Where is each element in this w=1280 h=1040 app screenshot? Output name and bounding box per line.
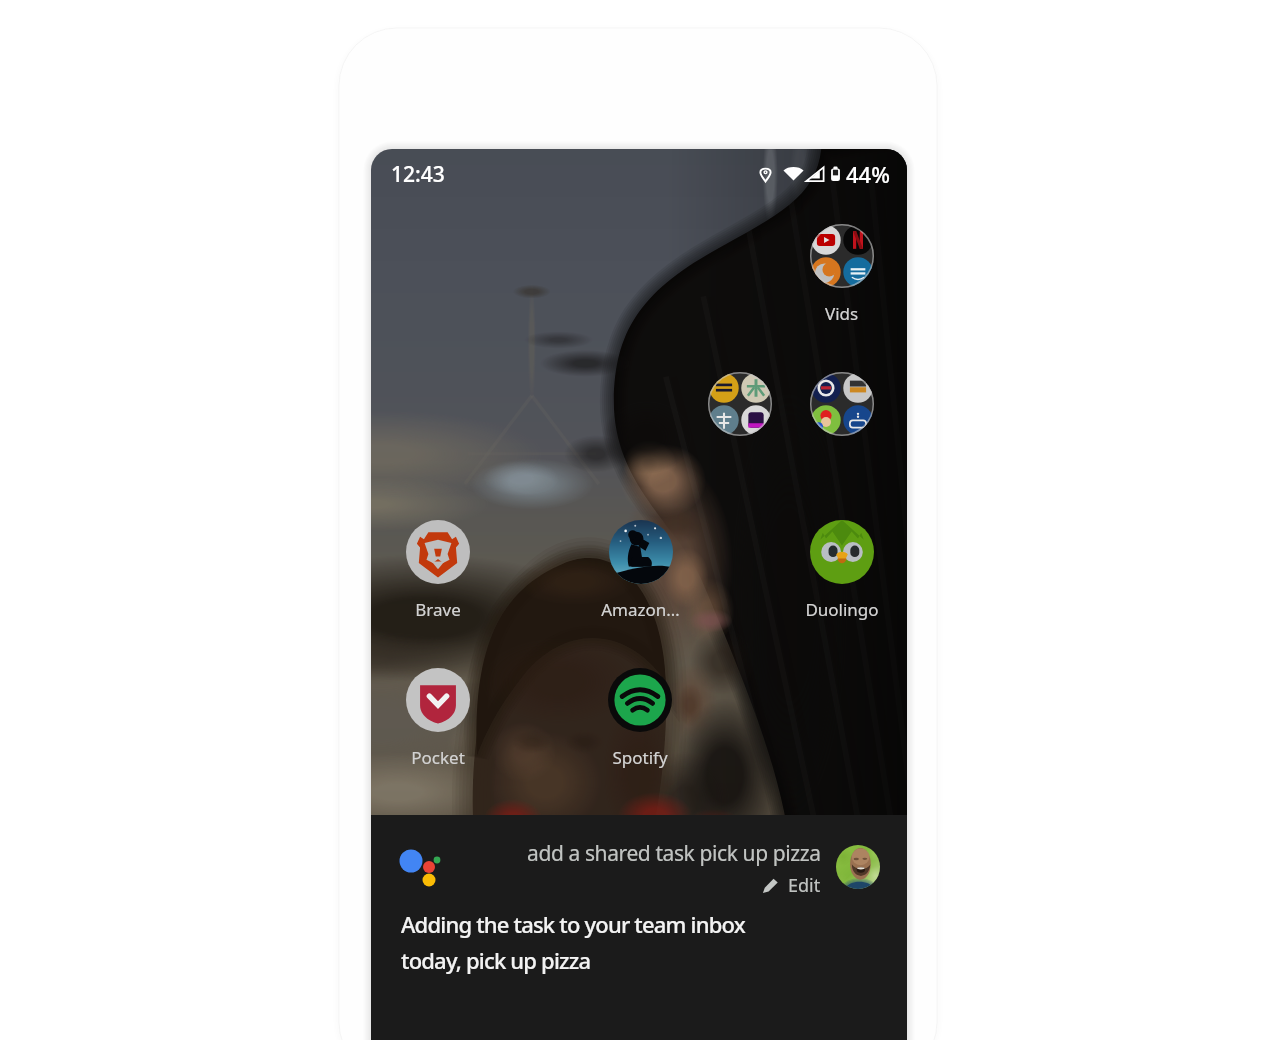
staticText: Brave [415, 598, 461, 621]
button[interactable]: Amazon… [584, 520, 696, 625]
staticText: 44% [846, 159, 890, 189]
staticText: Amazon… [601, 598, 680, 621]
button[interactable]: Edit [761, 873, 821, 898]
staticText: Duolingo [805, 598, 879, 621]
staticText: Edit [788, 873, 821, 898]
button[interactable]: Pocket [382, 668, 494, 773]
staticText: add a shared task pick up pizza [527, 839, 821, 868]
button[interactable]: Duolingo [786, 520, 898, 625]
button[interactable]: Vids [786, 224, 898, 329]
button[interactable]: App folder [684, 372, 796, 477]
staticText: Adding the task to your team inbox [401, 909, 745, 939]
staticText: Vids [825, 302, 859, 325]
staticText: today, pick up pizza [401, 945, 591, 975]
button[interactable]: Brave [382, 520, 494, 625]
button[interactable]: Profile [836, 845, 880, 889]
staticText: 12:43 [391, 160, 445, 189]
staticText: Pocket [411, 746, 465, 769]
button[interactable]: App folder [786, 372, 898, 477]
button[interactable]: Spotify [584, 668, 696, 773]
staticText: Spotify [612, 746, 668, 769]
